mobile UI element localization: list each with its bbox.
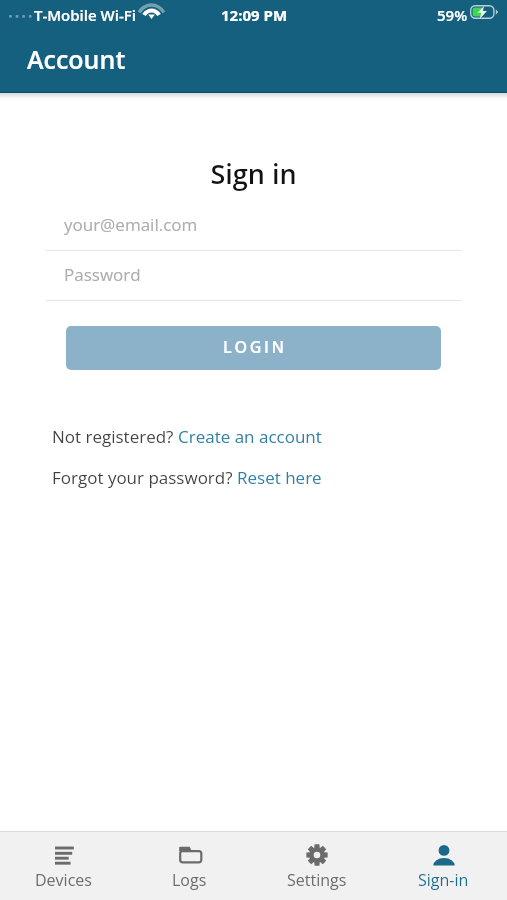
staticText: LOGIN [223, 336, 287, 358]
staticText: 59% [437, 5, 468, 25]
staticText: Devices [35, 869, 92, 891]
staticText: Forgot your password? [52, 466, 237, 489]
button[interactable]: Devices [0, 832, 126, 900]
staticText: Account [27, 42, 126, 76]
button[interactable]: your@email.com [46, 208, 462, 251]
button[interactable]: Logs [126, 832, 253, 900]
staticText: Settings [287, 869, 347, 891]
staticText: T-Mobile Wi-Fi [34, 5, 136, 25]
button[interactable]: Sign-in [380, 832, 507, 900]
button[interactable]: Create an account [178, 425, 322, 448]
staticText: Sign-in [418, 869, 469, 891]
staticText: your@email.com [64, 213, 198, 236]
staticText: Logs [172, 869, 207, 891]
staticText: Sign in [0, 155, 507, 192]
staticText: 12:09 PM [221, 5, 288, 25]
staticText: Password [64, 263, 141, 286]
button[interactable]: LOGIN [66, 326, 441, 370]
button[interactable]: Reset here [237, 466, 322, 489]
button[interactable]: Settings [253, 832, 380, 900]
button[interactable]: Password [46, 258, 462, 301]
staticText: Not registered? [52, 425, 178, 448]
